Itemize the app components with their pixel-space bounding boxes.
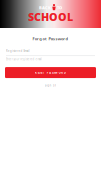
staticText: SCHOOL: [28, 10, 73, 24]
staticText: TO: [57, 5, 62, 10]
staticText: RESET PASSWORD: [35, 71, 66, 74]
button[interactable]: RESET PASSWORD: [5, 67, 96, 78]
staticText: Enter your registered email: [6, 58, 42, 61]
staticText: Forgot Password: [32, 36, 69, 41]
staticText: Registered Email: [6, 49, 30, 53]
button[interactable]: Sign In: [41, 82, 60, 89]
staticText: BACK: [39, 5, 51, 10]
staticText: Sign In: [45, 84, 56, 87]
